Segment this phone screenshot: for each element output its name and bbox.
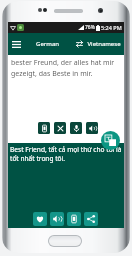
button[interactable]: Copy bbox=[38, 122, 50, 134]
button[interactable]: Copy bbox=[67, 212, 81, 226]
staticText: bester Freund, der alles hat mir gezeigt… bbox=[11, 58, 117, 78]
button[interactable]: Vietnamese bbox=[83, 33, 124, 55]
button[interactable]: Clear text bbox=[54, 122, 66, 134]
button[interactable]: Open navigation menu bbox=[8, 33, 24, 55]
staticText: German bbox=[36, 40, 59, 48]
button[interactable]: Listen bbox=[50, 212, 64, 226]
button[interactable]: Swap languages bbox=[72, 33, 86, 55]
staticText: Best Friend, tất cả mọi thứ cho tôi là t… bbox=[10, 145, 122, 163]
button[interactable]: Share bbox=[84, 212, 98, 226]
button[interactable]: Voice input bbox=[70, 122, 82, 134]
button[interactable]: Favourite bbox=[33, 212, 47, 226]
staticText: 5:24 PM bbox=[101, 24, 122, 31]
button[interactable]: Translate bbox=[101, 131, 120, 150]
button[interactable]: Listen bbox=[86, 122, 98, 134]
staticText: 76% bbox=[85, 24, 95, 31]
button[interactable]: German bbox=[25, 33, 70, 55]
staticText: Vietnamese bbox=[87, 40, 121, 48]
button[interactable]: Home bbox=[48, 235, 82, 247]
